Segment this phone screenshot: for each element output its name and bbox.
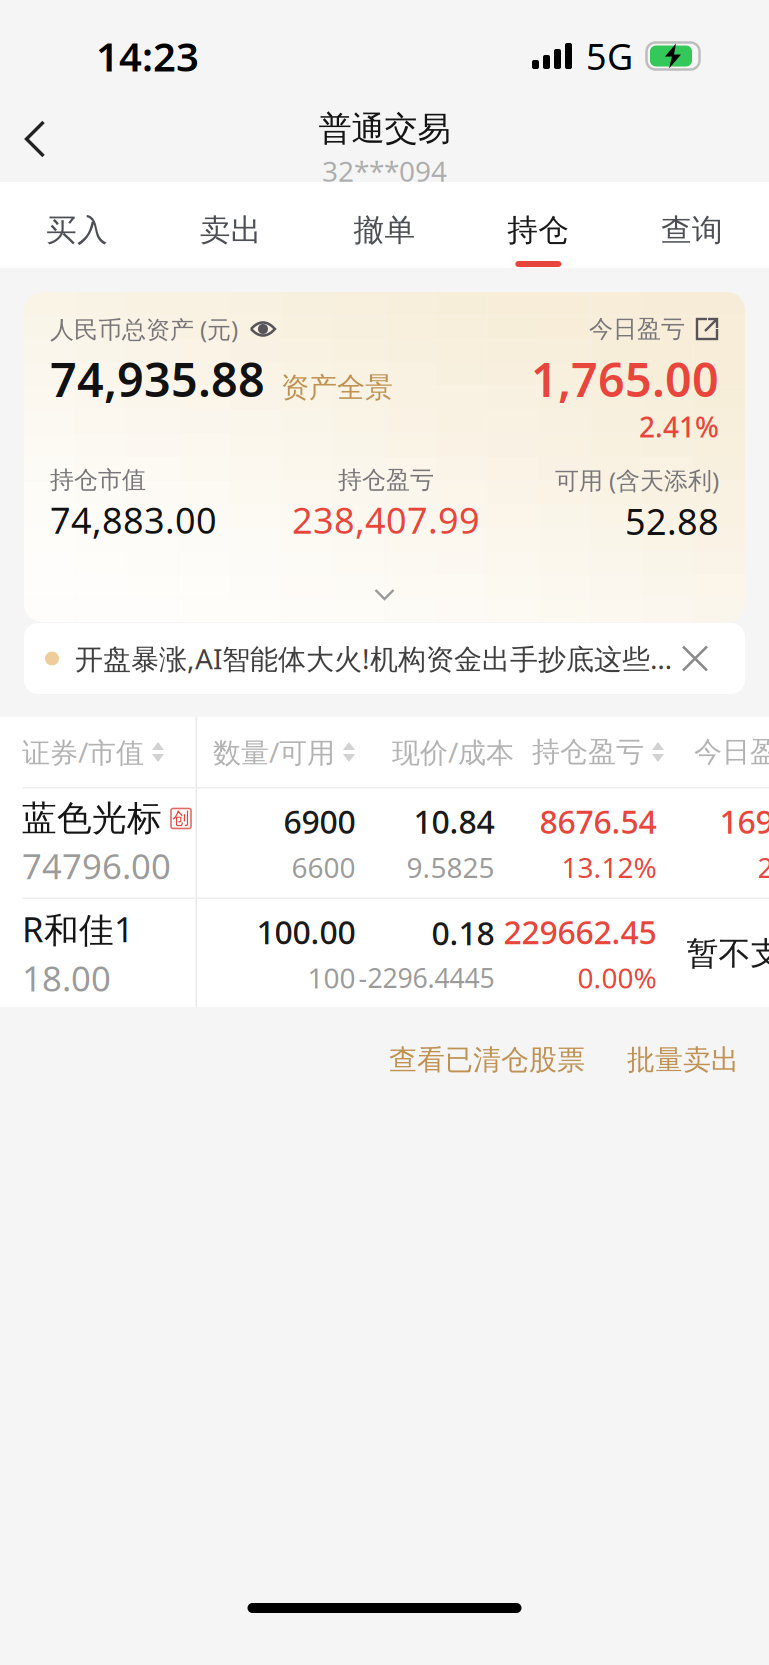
button[interactable]: Expand asset detail [24, 568, 745, 622]
staticText: 持仓盈亏 [338, 465, 434, 495]
button[interactable]: 查看已清仓股票 [389, 1029, 585, 1091]
staticText: 0.18 [431, 911, 494, 954]
staticText: 238,407.99 [292, 496, 480, 544]
staticText: 买入 [46, 211, 108, 249]
staticText: 普通交易 [318, 108, 450, 149]
staticText: 6900 [283, 800, 355, 843]
staticText: -2296.4445 [358, 960, 494, 995]
staticText: 0.00% [577, 959, 656, 996]
staticText: 18.00 [22, 955, 111, 1001]
staticText: 1,765.00 [531, 348, 719, 410]
staticText: 查看已清仓股票 [389, 1043, 585, 1077]
button[interactable]: 持仓 [461, 182, 615, 268]
staticText: 6600 [291, 849, 355, 886]
staticText: 卖出 [200, 211, 262, 249]
staticText: 资产全景 [281, 371, 393, 405]
staticText: 查询 [661, 211, 723, 249]
staticText: 100.00 [256, 911, 355, 953]
staticText: 现价/成本 [392, 733, 514, 771]
staticText: 5G [586, 32, 633, 80]
staticText: 2.41% [639, 408, 719, 445]
staticText: 今日盈亏 [694, 735, 769, 769]
staticText: 74,935.88 [50, 348, 265, 410]
staticText: 撤单 [353, 211, 415, 249]
staticText: 批量卖出 [627, 1043, 739, 1077]
button[interactable]: 买入 [0, 182, 154, 268]
staticText: 蓝色光标 [22, 797, 162, 840]
staticText: 暂不支持 [686, 934, 769, 973]
staticText: 人民币总资产 (元) [50, 313, 238, 345]
staticText: 数量/可用 [213, 733, 335, 771]
staticText: 今日盈亏 [589, 314, 685, 344]
staticText: 10.84 [413, 800, 494, 843]
button[interactable]: R和佳1 [0, 899, 197, 1008]
button[interactable]: 批量卖出 [627, 1029, 739, 1091]
button[interactable]: Dismiss news [681, 644, 709, 672]
staticText: 74796.00 [22, 843, 171, 889]
staticText: 开盘暴涨,AI智能体大火!机构资金出手抄底这些… [75, 640, 672, 677]
staticText: 持仓盈亏 [532, 735, 644, 769]
staticText: 14:23 [96, 29, 199, 82]
staticText: 1696.88 [719, 800, 769, 843]
staticText: 证券/市值 [22, 733, 144, 771]
staticText: 9.5825 [406, 849, 494, 886]
button[interactable]: 卖出 [154, 182, 308, 268]
button[interactable]: 查询 [615, 182, 769, 268]
staticText: 74,883.00 [50, 496, 217, 544]
button[interactable]: Back [0, 96, 70, 182]
staticText: 32***094 [322, 152, 447, 190]
staticText: 创 [172, 808, 189, 829]
button[interactable]: 蓝色光标 [0, 788, 197, 897]
staticText: 8676.54 [539, 800, 656, 843]
staticText: 可用 (含天添利) [555, 464, 719, 496]
staticText: 持仓市值 [50, 465, 146, 495]
staticText: 52.88 [625, 497, 719, 545]
staticText: 13.12% [561, 849, 656, 886]
staticText: 229662.45 [503, 911, 656, 953]
button[interactable]: 撤单 [308, 182, 461, 268]
staticText: 持仓 [507, 211, 569, 249]
staticText: R和佳1 [22, 906, 134, 952]
staticText: 100 [307, 959, 355, 996]
staticText: 2.33% [757, 849, 769, 886]
